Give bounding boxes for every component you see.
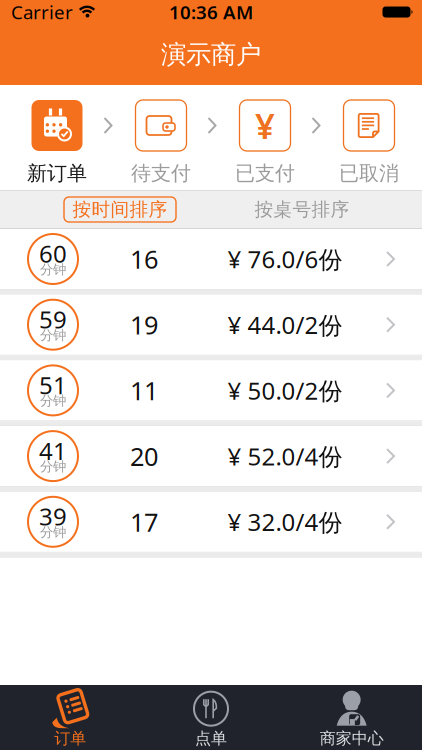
staticText: 19 — [130, 308, 158, 341]
staticText: 60 — [39, 238, 67, 269]
button[interactable]: 按时间排序 — [29, 197, 211, 222]
staticText: ¥ 52.0/4份 — [227, 440, 342, 472]
staticText: 11 — [130, 374, 158, 407]
staticText: 已支付 — [235, 161, 295, 186]
staticText: 分钟 — [40, 393, 66, 409]
staticText: ¥ 32.0/4份 — [227, 506, 342, 538]
staticText: 订单 — [54, 729, 86, 748]
staticText: 分钟 — [40, 327, 66, 343]
staticText: 59 — [39, 303, 67, 335]
button[interactable]: ¥ — [235, 100, 295, 186]
staticText: 按时间排序 — [72, 198, 167, 221]
staticText: 10:36 AM — [169, 0, 253, 24]
staticText: 商家中心 — [320, 729, 384, 748]
staticText: 51 — [39, 369, 67, 401]
button[interactable]: 41 — [0, 426, 422, 486]
staticText: 新订单 — [27, 161, 87, 186]
staticText: ¥ 50.0/2份 — [227, 374, 342, 406]
button[interactable]: 39 — [0, 492, 422, 552]
staticText: 按桌号排序 — [254, 198, 349, 221]
button[interactable]: 51 — [0, 360, 422, 420]
staticText: 41 — [39, 435, 67, 467]
button[interactable]: 59 — [0, 295, 422, 355]
staticText: Carrier — [11, 0, 73, 24]
button[interactable]: 订单 — [0, 685, 141, 750]
staticText: 39 — [39, 500, 67, 532]
button[interactable]: 点单 — [141, 685, 281, 750]
staticText: 分钟 — [40, 261, 66, 278]
staticText: ¥ — [255, 102, 275, 148]
staticText: 16 — [130, 242, 158, 276]
staticText: 待支付 — [131, 161, 191, 186]
staticText: 演示商户 — [161, 39, 261, 70]
staticText: ¥ 44.0/2份 — [227, 309, 342, 341]
button[interactable]: 待支付 — [131, 100, 191, 186]
staticText: 已取消 — [339, 161, 399, 186]
button[interactable]: 商家中心 — [281, 685, 422, 750]
staticText: ¥ 76.0/6份 — [227, 243, 342, 275]
button[interactable]: 60 — [0, 229, 422, 289]
staticText: 17 — [130, 505, 158, 539]
staticText: 分钟 — [40, 458, 66, 475]
staticText: 分钟 — [40, 524, 66, 540]
button[interactable]: 按桌号排序 — [211, 198, 393, 221]
button[interactable]: 已取消 — [339, 100, 399, 186]
staticText: 点单 — [195, 729, 227, 748]
button[interactable]: 新订单 — [27, 100, 87, 186]
staticText: 20 — [130, 439, 158, 473]
